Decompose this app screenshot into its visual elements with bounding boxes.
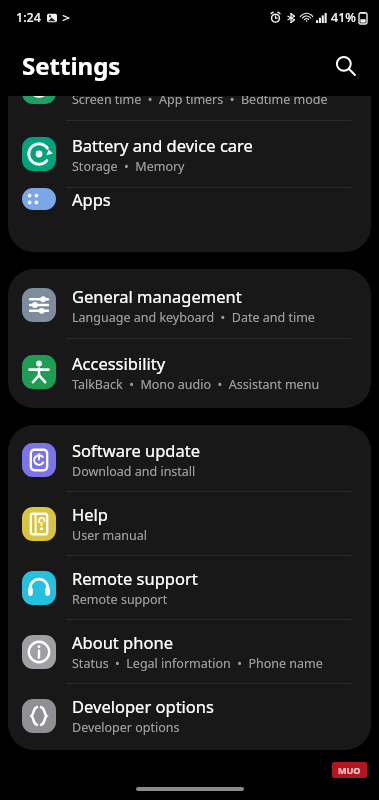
- staticText: Language and keyboard • Date and time: [72, 309, 315, 326]
- staticText: User manual: [72, 527, 147, 544]
- button[interactable]: About phone: [8, 620, 371, 683]
- staticText: Download and install: [72, 463, 196, 480]
- staticText: Developer options: [72, 695, 214, 717]
- button[interactable]: Developer options: [8, 684, 371, 747]
- staticText: Apps: [72, 188, 111, 210]
- button[interactable]: Help: [8, 492, 371, 555]
- staticText: Settings: [22, 49, 121, 82]
- staticText: 41%: [331, 9, 356, 26]
- staticText: Help: [72, 503, 108, 525]
- staticText: Storage • Memory: [72, 158, 185, 175]
- button[interactable]: Software update: [8, 428, 371, 491]
- staticText: Accessibility: [72, 352, 166, 374]
- button[interactable]: Digital Wellbeing and parental controls: [8, 96, 371, 120]
- staticText: General management: [72, 285, 242, 307]
- staticText: Remote support: [72, 567, 198, 589]
- staticText: Developer options: [72, 719, 180, 736]
- staticText: Battery and device care: [72, 134, 253, 156]
- staticText: MUO: [338, 764, 361, 776]
- button[interactable]: Search: [325, 45, 365, 85]
- button[interactable]: Remote support: [8, 556, 371, 619]
- button[interactable]: General management: [8, 272, 371, 338]
- staticText: TalkBack • Mono audio • Assistant menu: [72, 376, 320, 393]
- staticText: Remote support: [72, 591, 168, 608]
- button[interactable]: Accessibility: [8, 339, 371, 405]
- staticText: 1:24: [16, 9, 41, 26]
- staticText: Screen time • App timers • Bedtime mode: [72, 96, 328, 108]
- staticText: About phone: [72, 631, 173, 653]
- staticText: Software update: [72, 439, 200, 461]
- staticText: Status • Legal information • Phone name: [72, 655, 323, 672]
- button[interactable]: Apps: [8, 188, 371, 210]
- button[interactable]: Battery and device care: [8, 121, 371, 187]
